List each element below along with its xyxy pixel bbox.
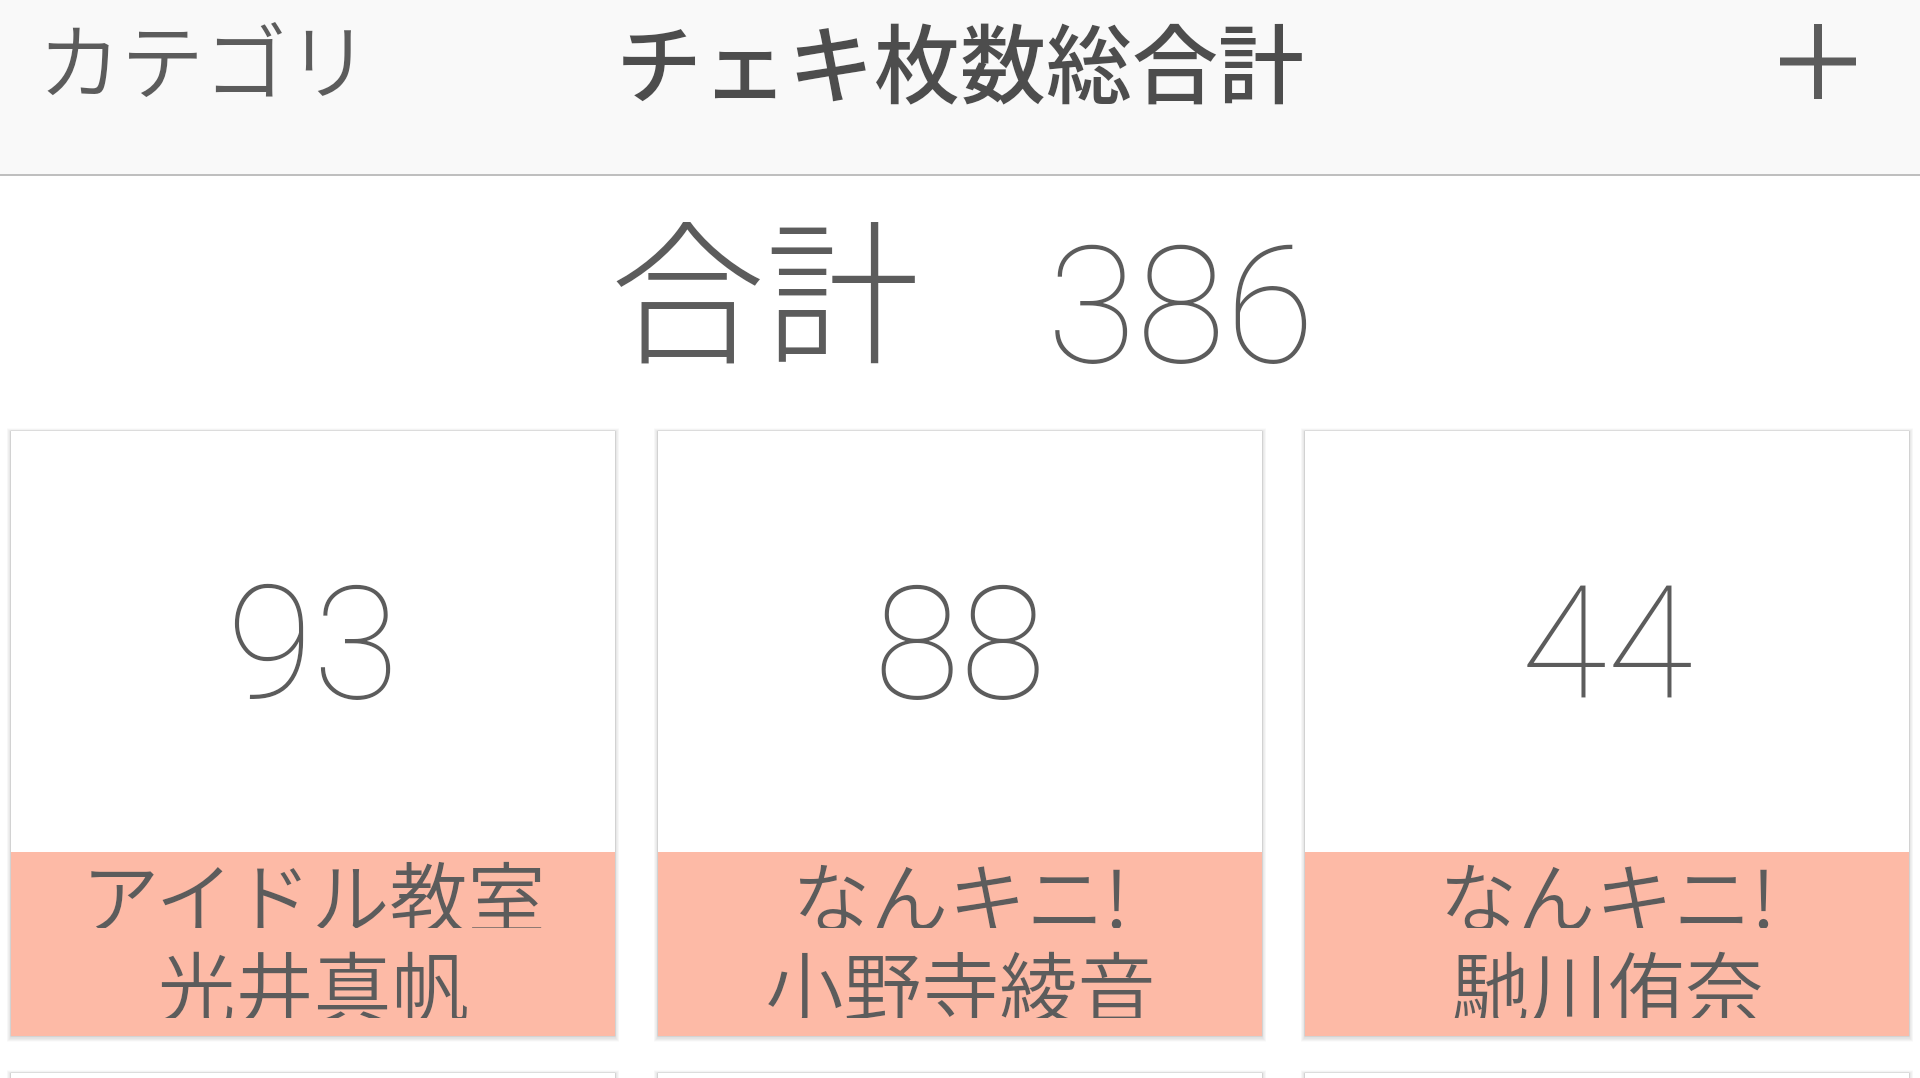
staticText: なんキニ! <box>1439 838 1776 928</box>
staticText: 44 <box>1521 552 1693 736</box>
staticText: 93 <box>227 552 399 736</box>
button[interactable]: Add <box>1738 1 1898 121</box>
staticText: カテゴリ <box>38 0 370 117</box>
staticText: 光井真帆 <box>157 928 470 1018</box>
staticText: チェキ枚数総合計 <box>616 0 1304 117</box>
staticText: 小野寺綾音 <box>765 928 1156 1018</box>
staticText: 386 <box>1047 211 1315 402</box>
staticText: なんキニ! <box>792 838 1129 928</box>
staticText: 合計 <box>610 171 920 395</box>
button[interactable]: 88 <box>658 431 1262 1036</box>
staticText: アイドル教室 <box>81 838 546 928</box>
button[interactable]: 93 <box>11 431 615 1036</box>
staticText: 88 <box>874 552 1046 736</box>
button[interactable]: 44 <box>1305 431 1909 1036</box>
staticText: 馳川侑奈 <box>1451 928 1764 1018</box>
button[interactable]: カテゴリ <box>4 0 404 117</box>
